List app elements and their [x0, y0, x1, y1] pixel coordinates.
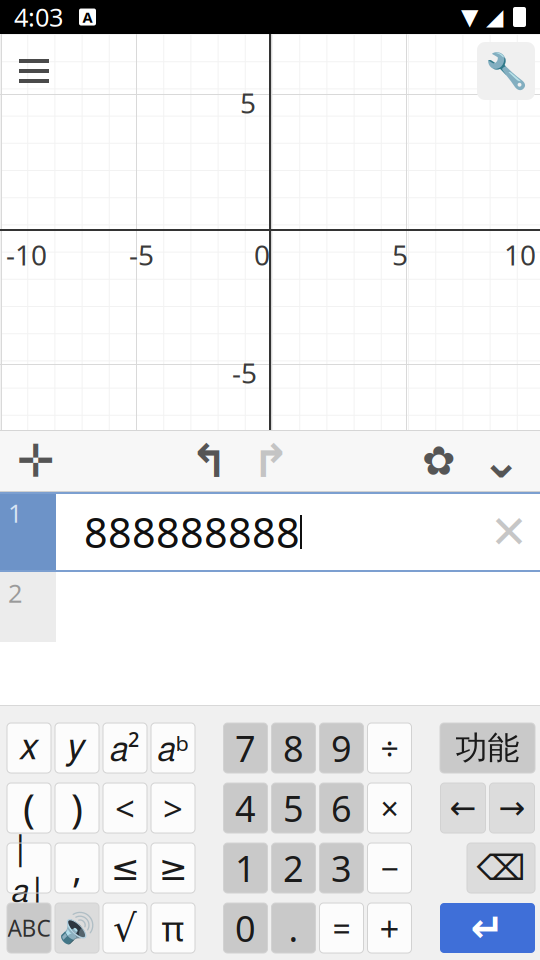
staticText: 7 — [235, 724, 256, 772]
staticText: ABC — [7, 913, 50, 943]
button[interactable]: Undo — [178, 430, 240, 492]
button[interactable]: √ — [103, 903, 147, 953]
staticText: ≤ — [110, 848, 139, 888]
button[interactable]: Move right — [489, 783, 534, 833]
staticText: → — [498, 790, 525, 826]
button[interactable]: 9 — [319, 723, 363, 773]
staticText: 4 — [235, 784, 256, 832]
staticText: 2 — [283, 844, 304, 892]
button[interactable]: 3 — [319, 843, 363, 893]
staticText: 1 — [235, 844, 256, 892]
button[interactable]: 1 — [223, 843, 267, 893]
staticText: 2 — [8, 576, 22, 610]
staticText: 0 — [254, 236, 270, 273]
staticText: 𝑥 — [19, 730, 39, 765]
button[interactable]: 功能 — [440, 723, 535, 773]
button[interactable]: ) — [55, 783, 99, 833]
button[interactable]: 8 — [271, 723, 315, 773]
button[interactable]: 7 — [223, 723, 267, 773]
staticText: ↵ — [470, 905, 504, 951]
button[interactable]: |𝑎| — [7, 843, 51, 893]
button[interactable]: Redo — [240, 430, 302, 492]
staticText: = — [332, 907, 350, 949]
staticText: ≥ — [158, 848, 187, 888]
staticText: 功能 — [455, 728, 519, 768]
button[interactable]: < — [103, 783, 147, 833]
staticText: + — [379, 905, 399, 951]
staticText: A — [82, 7, 92, 27]
button[interactable]: 5 — [271, 783, 315, 833]
staticText: > — [163, 785, 183, 831]
button[interactable]: ≥ — [151, 843, 195, 893]
button[interactable]: 2 — [0, 572, 540, 642]
staticText: 10 — [504, 236, 536, 273]
button[interactable]: 2 — [271, 843, 315, 893]
staticText: ÷ — [380, 727, 398, 769]
staticText: π — [161, 905, 184, 951]
staticText: ✕ — [490, 506, 528, 558]
button[interactable]: ABC — [7, 903, 51, 953]
button[interactable]: − — [367, 843, 411, 893]
staticText: 🔧 — [484, 51, 527, 91]
button[interactable]: 4 — [223, 783, 267, 833]
staticText: 5 — [240, 84, 256, 121]
staticText: 𝑎² — [110, 726, 140, 770]
staticText: 1 — [8, 496, 22, 530]
button[interactable]: 𝑥 — [7, 723, 51, 773]
button[interactable]: 1 — [0, 492, 540, 572]
staticText: . — [288, 904, 298, 952]
button[interactable]: × — [367, 783, 411, 833]
staticText: < — [115, 785, 135, 831]
button[interactable]: Add expression — [0, 430, 72, 492]
staticText: 9 — [331, 724, 352, 772]
button[interactable]: Graph settings — [477, 42, 535, 100]
staticText: ◢ — [486, 4, 503, 30]
button[interactable]: 6 — [319, 783, 363, 833]
staticText: × — [380, 787, 398, 829]
staticText: 5 — [392, 236, 408, 273]
button[interactable]: 0 — [223, 903, 267, 953]
staticText: ✿ — [422, 438, 456, 484]
staticText: 6 — [331, 784, 352, 832]
staticText: ↰ — [190, 435, 228, 487]
button[interactable]: 𝑦 — [55, 723, 99, 773]
button[interactable]: 🔊 — [55, 903, 99, 953]
staticText: ▼ — [461, 4, 478, 30]
staticText: ( — [23, 781, 35, 834]
button[interactable]: ÷ — [367, 723, 411, 773]
staticText: 𝑎ᵇ — [157, 726, 188, 770]
staticText: |𝑎| — [11, 825, 46, 910]
staticText: ⌫ — [476, 848, 525, 888]
button[interactable]: Settings — [408, 430, 470, 492]
button[interactable]: > — [151, 783, 195, 833]
button[interactable]: + — [367, 903, 411, 953]
staticText: ← — [449, 790, 476, 826]
button[interactable]: , — [55, 843, 99, 893]
button[interactable]: Move left — [440, 783, 485, 833]
staticText: 𝑦 — [68, 730, 85, 765]
staticText: 3 — [331, 844, 352, 892]
button[interactable]: = — [319, 903, 363, 953]
staticText: 888888888 — [84, 505, 300, 559]
button[interactable]: Backspace — [467, 843, 535, 893]
staticText: -5 — [129, 236, 154, 273]
button[interactable]: . — [271, 903, 315, 953]
staticText: − — [380, 847, 398, 889]
staticText: 🔊 — [58, 911, 95, 945]
button[interactable]: π — [151, 903, 195, 953]
button[interactable]: Enter — [440, 903, 535, 953]
staticText: 5 — [283, 784, 304, 832]
staticText: -10 — [6, 236, 47, 273]
staticText: 4:03 — [14, 0, 63, 34]
staticText: √ — [113, 907, 137, 949]
staticText: ) — [71, 781, 83, 834]
staticText: ⌄ — [481, 434, 521, 488]
staticText: -5 — [232, 354, 257, 391]
button[interactable]: Collapse — [470, 430, 532, 492]
button[interactable]: ( — [7, 783, 51, 833]
button[interactable]: 𝑎ᵇ — [151, 723, 195, 773]
button[interactable]: ≤ — [103, 843, 147, 893]
button[interactable]: 𝑎² — [103, 723, 147, 773]
staticText: 8 — [283, 724, 304, 772]
button[interactable]: Menu — [6, 43, 62, 99]
